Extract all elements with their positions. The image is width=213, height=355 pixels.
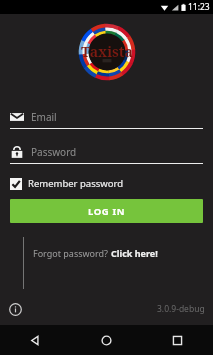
button[interactable]: Home [71,325,142,355]
button[interactable]: Recent apps [142,325,213,355]
button[interactable]: Back [0,325,71,355]
button[interactable]: LOG IN [10,199,203,223]
button[interactable]: Email [10,110,203,129]
staticText: Email [31,110,57,124]
staticText: Password [31,145,77,159]
staticText: Taxista [81,42,133,61]
staticText: Remember password [28,177,124,190]
button[interactable]: Information [6,300,24,318]
staticText: Forgot password? [33,247,111,259]
button[interactable]: Remember password [10,177,124,190]
staticText: 3.0.9-debug [157,303,205,315]
button[interactable]: Forgot password? [33,247,158,259]
staticText: Click here! [111,247,158,259]
button[interactable]: Password [10,145,203,164]
staticText: 11:23 [188,1,210,13]
staticText: LOG IN [88,205,126,218]
